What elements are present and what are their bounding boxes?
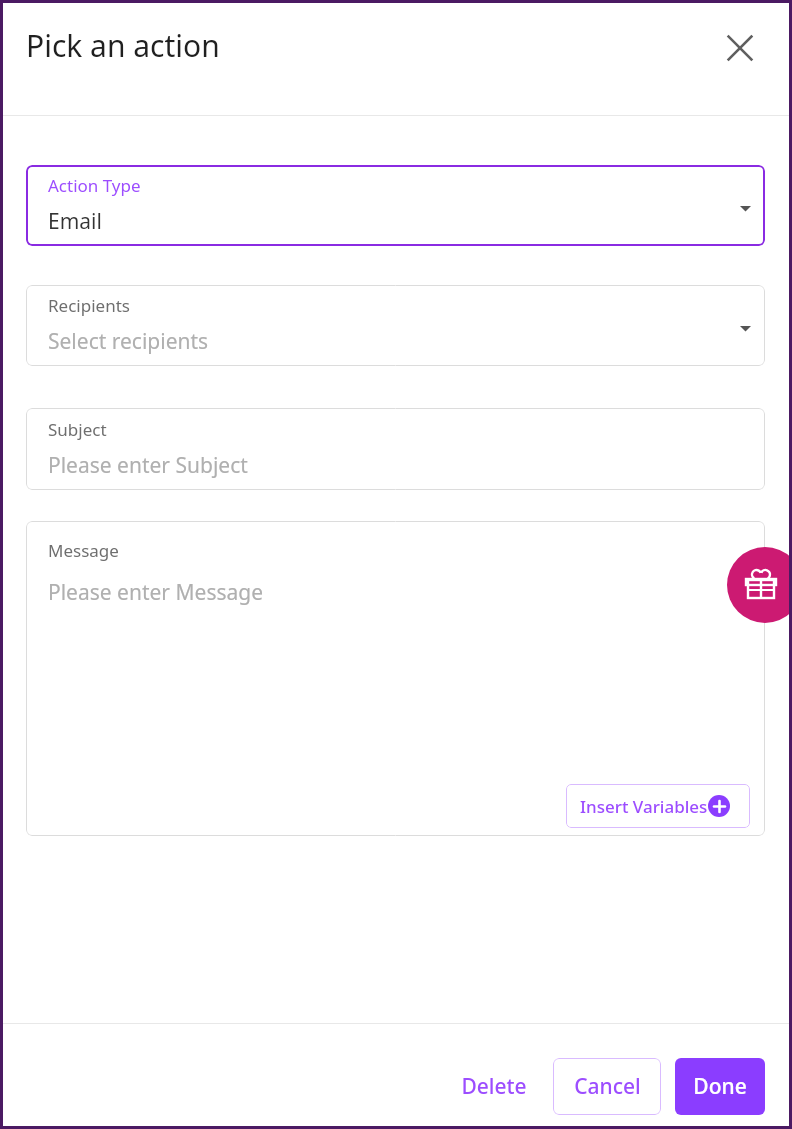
button[interactable] — [26, 408, 765, 490]
button[interactable]: Done — [675, 1058, 765, 1115]
other: Open dropdown — [737, 320, 753, 336]
staticText: Action Type — [48, 174, 141, 197]
staticText: Recipients — [48, 294, 130, 317]
staticText: Please enter Subject — [48, 451, 248, 480]
staticText: Pick an action — [26, 25, 220, 66]
button[interactable] — [26, 165, 765, 246]
staticText: Subject — [48, 418, 107, 441]
button[interactable] — [26, 285, 765, 366]
button[interactable]: Insert Variables — [566, 784, 750, 828]
staticText: Select recipients — [48, 327, 209, 356]
button[interactable] — [26, 521, 765, 836]
staticText: Cancel — [574, 1072, 641, 1101]
button[interactable]: Gifts — [727, 547, 792, 623]
staticText: Delete — [461, 1072, 527, 1101]
staticText: Insert Variables — [580, 795, 708, 818]
button[interactable]: Close — [716, 24, 764, 72]
staticText: Done — [693, 1072, 747, 1101]
staticText: Please enter Message — [48, 578, 264, 607]
staticText: Email — [48, 207, 102, 236]
other: Open dropdown — [737, 200, 753, 216]
staticText: Message — [48, 539, 119, 562]
button[interactable]: Cancel — [553, 1058, 661, 1115]
button[interactable]: Delete — [442, 1060, 546, 1112]
